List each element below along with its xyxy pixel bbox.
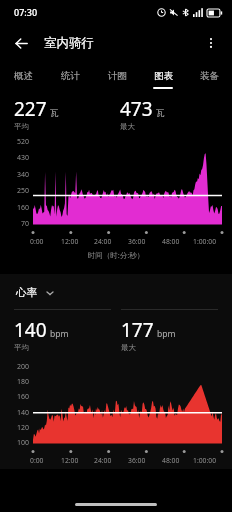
button[interactable]: 心率 xyxy=(14,284,57,301)
staticText: 180 xyxy=(17,377,30,387)
staticText: 473 xyxy=(120,96,153,122)
staticText: 装备 xyxy=(200,70,219,82)
staticText: 12:00 xyxy=(61,456,79,465)
staticText: 200 xyxy=(17,362,30,372)
staticText: 0:00 xyxy=(30,456,44,465)
staticText: 100 xyxy=(17,438,30,448)
button[interactable]: 概述 xyxy=(0,62,47,90)
staticText: 平均 xyxy=(14,343,29,352)
staticText: 160 xyxy=(17,392,30,402)
staticText: 140 xyxy=(17,408,30,418)
staticText: 统计 xyxy=(61,70,80,82)
staticText: 0:00 xyxy=(30,237,44,246)
staticText: 计圈 xyxy=(108,70,127,82)
staticText: 48:00 xyxy=(162,456,180,465)
staticText: 最大 xyxy=(121,343,136,352)
staticText: 1:00:00 xyxy=(193,456,217,465)
staticText: 平均 xyxy=(14,122,29,131)
staticText: 室内骑行 xyxy=(44,35,94,51)
staticText: 36:00 xyxy=(128,456,146,465)
staticText: 70 xyxy=(21,219,30,229)
staticText: 250 xyxy=(17,186,30,196)
staticText: 时间（时:分:秒） xyxy=(0,250,232,260)
staticText: 瓦 xyxy=(156,108,165,119)
staticText: 48:00 xyxy=(162,237,180,246)
staticText: 心率 xyxy=(16,286,37,299)
staticText: 340 xyxy=(17,170,30,180)
staticText: 24:00 xyxy=(94,237,112,246)
staticText: 07:30 xyxy=(14,6,38,18)
staticText: 160 xyxy=(17,203,30,213)
staticText: bpm xyxy=(50,328,69,340)
button[interactable]: 统计 xyxy=(47,62,94,90)
staticText: 最大 xyxy=(120,122,135,131)
staticText: 1:00:00 xyxy=(193,237,217,246)
staticText: 图表 xyxy=(154,70,173,82)
button[interactable]: 计圈 xyxy=(94,62,140,90)
staticText: bpm xyxy=(157,328,176,340)
staticText: 177 xyxy=(121,317,154,343)
staticText: 520 xyxy=(17,137,30,147)
button[interactable]: 图表 xyxy=(140,62,186,90)
staticText: 430 xyxy=(17,153,30,163)
staticText: 概述 xyxy=(14,70,33,82)
staticText: 36:00 xyxy=(128,237,146,246)
staticText: 12:00 xyxy=(61,237,79,246)
staticText: 140 xyxy=(14,317,47,343)
staticText: 120 xyxy=(17,423,30,433)
button[interactable]: 装备 xyxy=(186,62,232,90)
staticText: 227 xyxy=(14,96,47,122)
button[interactable]: More options xyxy=(196,28,226,58)
button[interactable]: Back xyxy=(6,28,36,58)
staticText: 瓦 xyxy=(50,108,59,119)
staticText: 24:00 xyxy=(94,456,112,465)
